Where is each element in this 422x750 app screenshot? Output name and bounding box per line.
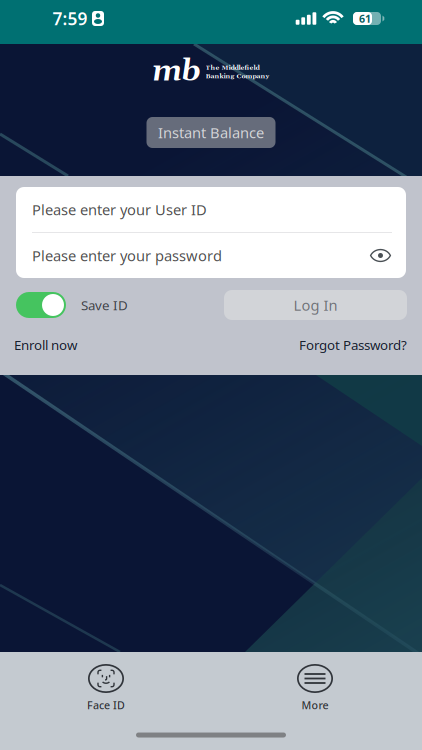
staticText: Banking Company	[205, 72, 269, 80]
staticText: The Middlefield	[205, 63, 259, 72]
button[interactable]: More	[212, 664, 418, 712]
staticText: 61	[359, 11, 371, 26]
button[interactable]: Show password	[370, 249, 391, 262]
button[interactable]: Instant Balance	[146, 117, 275, 148]
button[interactable]: Save ID	[16, 292, 66, 318]
staticText: Save ID	[81, 296, 128, 314]
button[interactable]: Face ID	[0, 664, 212, 712]
staticText: Instant Balance	[158, 123, 264, 142]
button[interactable]: Forgot Password?	[299, 336, 407, 354]
staticText: Please enter your password	[32, 246, 222, 265]
staticText: Log In	[293, 295, 337, 315]
staticText: Please enter your User ID	[32, 200, 207, 219]
button[interactable]: Enroll now	[14, 336, 77, 354]
staticText: 7:59	[52, 7, 87, 30]
staticText: mb	[152, 53, 200, 91]
staticText: More	[301, 698, 328, 712]
button[interactable]: Log In	[224, 290, 407, 320]
staticText: Enroll now	[14, 336, 77, 354]
staticText: Face ID	[87, 698, 125, 712]
staticText: Forgot Password?	[299, 336, 407, 354]
